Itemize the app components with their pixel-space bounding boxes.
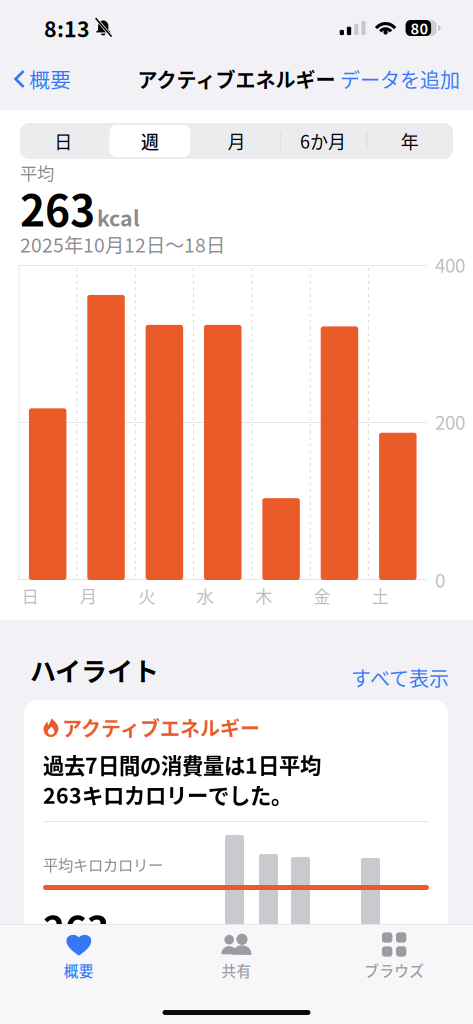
staticText: 土 [372,583,389,608]
button[interactable]: 年 [366,123,453,159]
staticText: アクティブエネルギー [137,64,335,93]
staticText: 月 [227,128,245,154]
staticText: すべて表示 [351,663,449,692]
button[interactable]: 週 [107,123,193,159]
staticText: 火 [138,583,155,608]
staticText: 2025年10月12日〜18日 [20,230,225,258]
staticText: ハイライト [30,651,159,689]
button[interactable]: すべて表示 [345,659,455,696]
staticText: 日 [54,128,72,154]
staticText: 概要 [29,64,71,94]
staticText: 概要 [64,959,94,981]
staticText: 過去7日間の消費量は1日平均 [43,749,321,780]
button[interactable]: 概要 [0,924,158,981]
staticText: 木 [255,583,272,608]
button[interactable]: 共有 [158,924,315,981]
staticText: 年 [401,128,419,154]
staticText: 0 [435,566,445,593]
button[interactable]: 日 [20,123,107,159]
staticText: 80 [410,17,428,39]
staticText: 金 [313,583,330,608]
staticText: 日 [21,583,38,608]
staticText: 水 [197,583,214,608]
staticText: 400 [435,251,465,278]
staticText: 263 [43,900,109,954]
button[interactable]: 6か月 [280,123,366,159]
staticText: 平均 [20,160,54,185]
staticText: ブラウズ [364,959,424,981]
button[interactable]: アクティブエネルギー [24,700,448,940]
staticText: 8:13 [44,13,90,43]
staticText: 6か月 [300,128,346,154]
staticText: 共有 [221,959,251,981]
staticText: アクティブエネルギー [62,713,260,742]
staticText: 月 [80,583,97,608]
staticText: 週 [141,128,159,154]
button[interactable]: 月 [193,123,280,159]
button[interactable]: 概要 [0,56,71,102]
staticText: 263 [20,177,95,239]
staticText: 200 [435,408,465,435]
button[interactable]: ブラウズ [315,924,473,981]
staticText: データを追加 [340,64,460,93]
staticText: kcal [97,202,140,233]
staticText: 263キロカロリーでした。 [43,779,292,810]
staticText: 平均キロカロリー [43,853,163,875]
button[interactable]: データを追加 [340,56,473,101]
staticText: kcal [112,920,152,949]
